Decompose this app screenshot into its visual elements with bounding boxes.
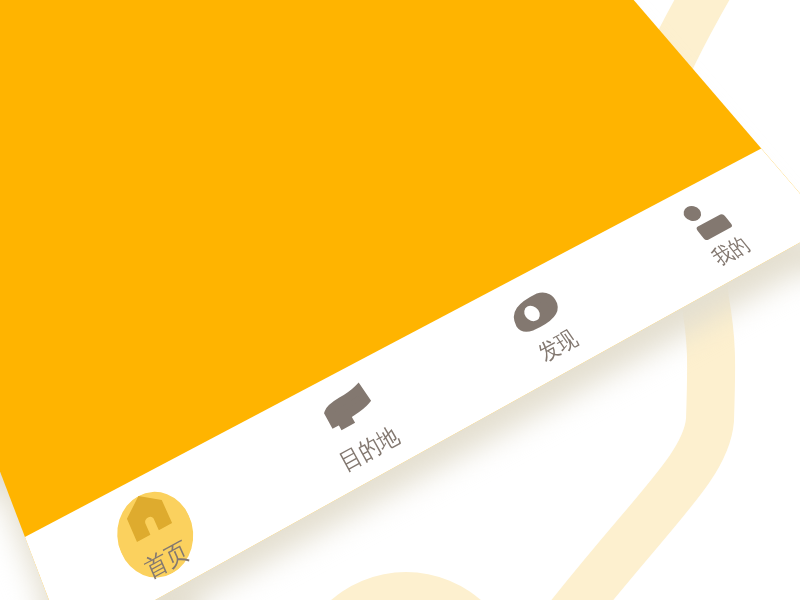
button[interactable]: 目的地 (232, 327, 480, 529)
other: 发现 (500, 284, 570, 341)
button[interactable]: 发现 (422, 234, 661, 420)
other: 目的地 (318, 383, 378, 433)
button[interactable]: 首页 (25, 428, 282, 600)
staticText: 我的 (706, 232, 756, 272)
staticText: 首页 (140, 535, 194, 587)
staticText: 目的地 (334, 421, 406, 479)
other: 首页 (121, 487, 172, 542)
other: 我的 (678, 196, 734, 245)
button[interactable]: 我的 (598, 148, 800, 319)
staticText: 发现 (533, 325, 584, 368)
